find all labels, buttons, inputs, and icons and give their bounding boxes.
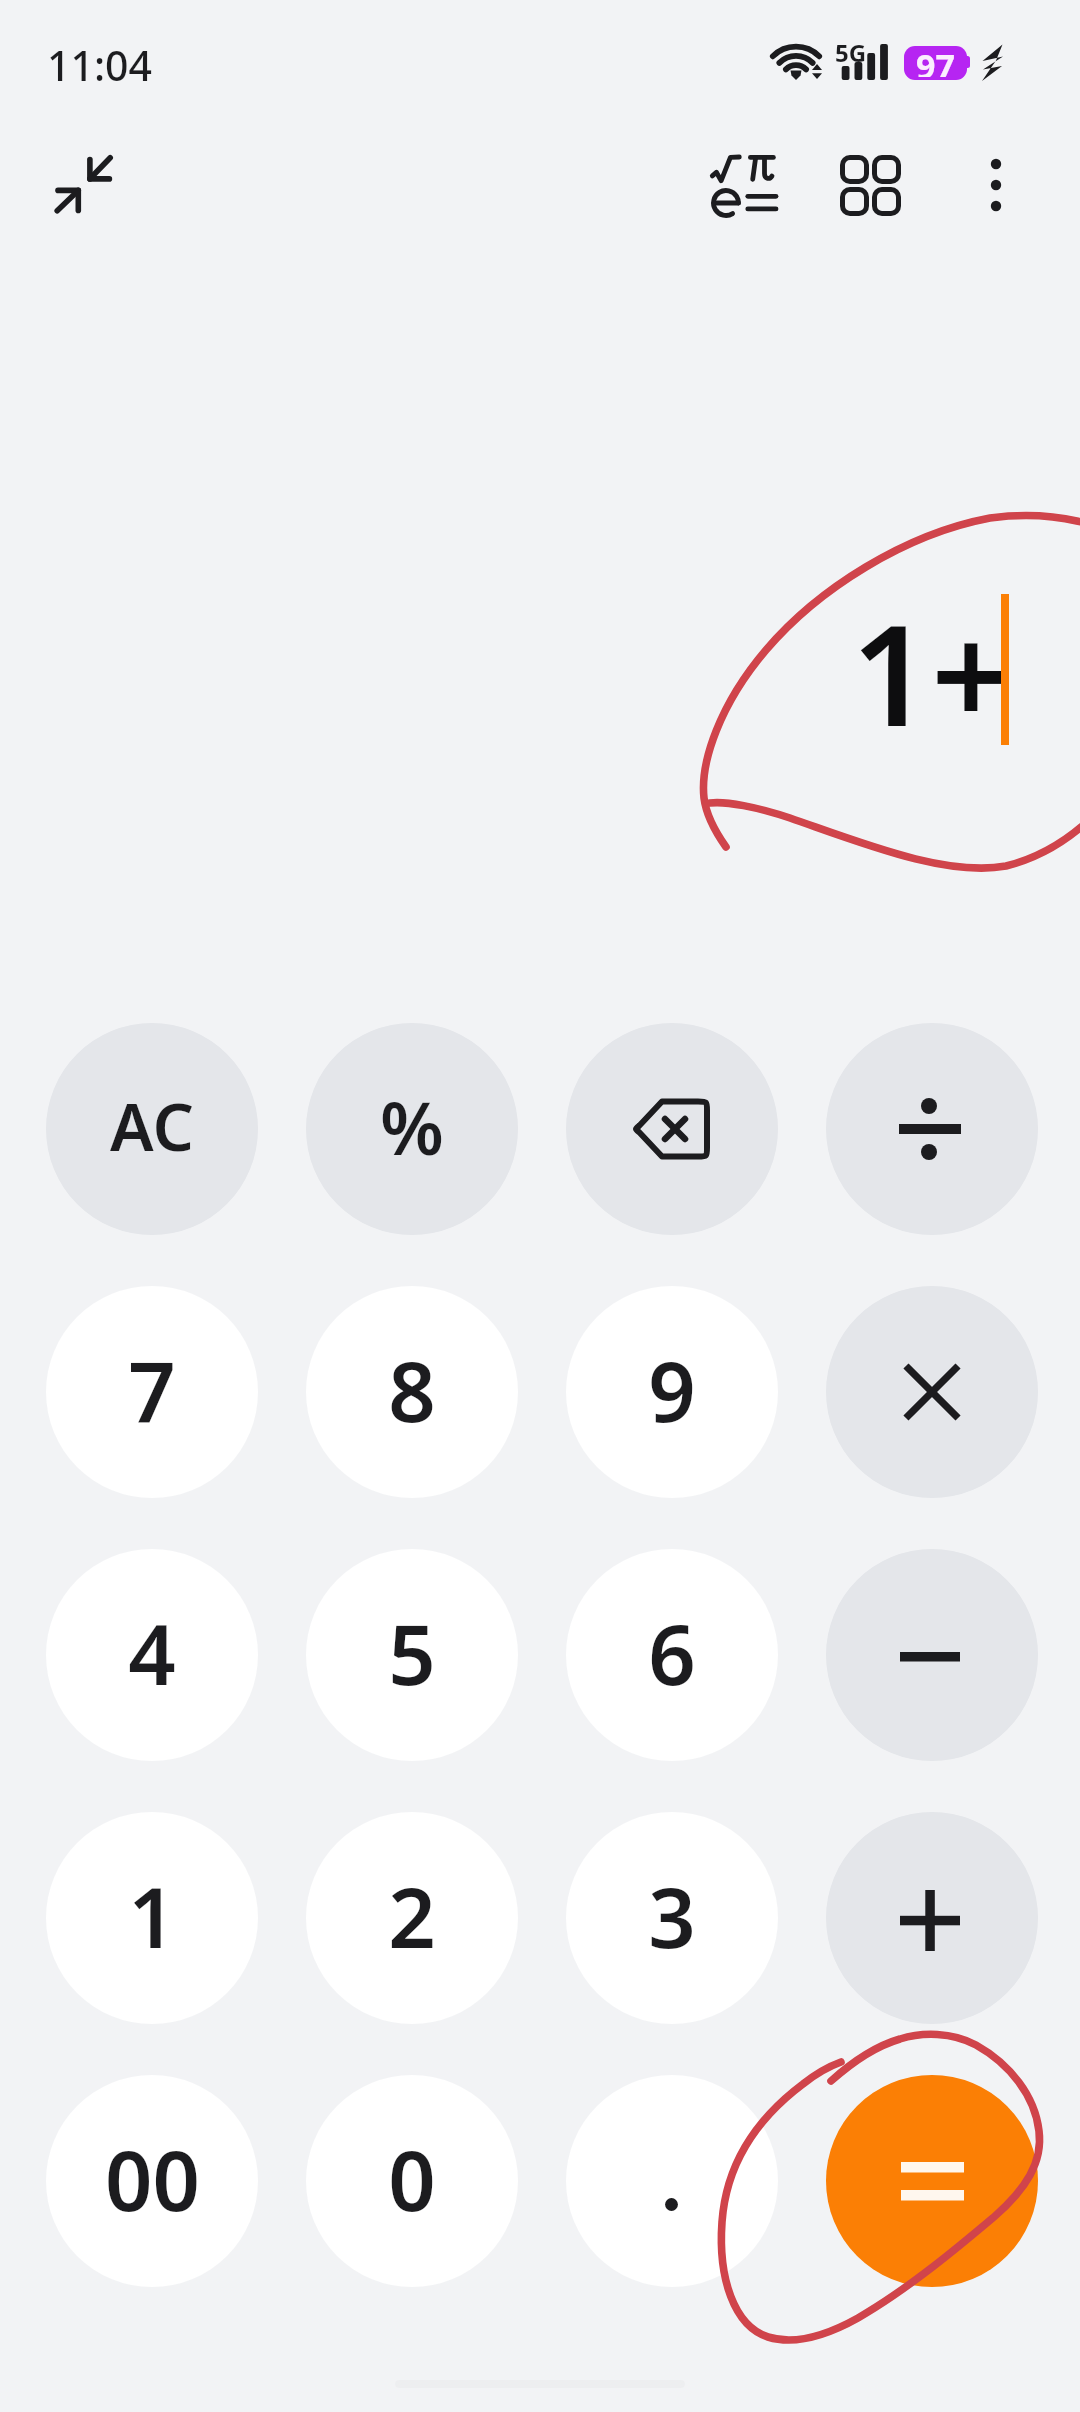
staticText: 3 xyxy=(648,1859,696,1972)
staticText: 2 xyxy=(388,1859,436,1972)
staticText: 1 xyxy=(128,1859,176,1972)
button[interactable]: 9 xyxy=(566,1286,778,1498)
button[interactable]: 1 xyxy=(46,1812,258,2024)
button[interactable]: Divide xyxy=(826,1023,1038,1235)
button[interactable]: Equals xyxy=(826,2075,1038,2287)
button[interactable]: Keypad layout xyxy=(815,132,925,242)
button[interactable]: 4 xyxy=(46,1549,258,1761)
staticText: % xyxy=(380,1077,444,1176)
button[interactable]: Subtract xyxy=(826,1549,1038,1761)
button[interactable]: 7 xyxy=(46,1286,258,1498)
button[interactable]: Multiply xyxy=(826,1286,1038,1498)
staticText: 11:04 xyxy=(47,37,152,93)
staticText: 7 xyxy=(128,1333,176,1446)
button[interactable]: 00 xyxy=(46,2075,258,2287)
button[interactable]: Add xyxy=(826,1812,1038,2024)
button[interactable]: More options xyxy=(941,132,1051,242)
staticText: 5 xyxy=(388,1596,436,1709)
button[interactable]: 6 xyxy=(566,1549,778,1761)
staticText: 97 xyxy=(916,46,955,77)
button[interactable]: Decimal point xyxy=(566,2075,778,2287)
staticText: 4 xyxy=(128,1596,176,1709)
button[interactable]: 2 xyxy=(306,1812,518,2024)
staticText: 0 xyxy=(388,2122,436,2235)
button[interactable]: AC xyxy=(46,1023,258,1235)
button[interactable]: 0 xyxy=(306,2075,518,2287)
staticText: 00 xyxy=(105,2122,200,2235)
button[interactable]: Backspace xyxy=(566,1023,778,1235)
button[interactable]: % xyxy=(306,1023,518,1235)
staticText: 5G xyxy=(835,36,867,69)
button[interactable]: Collapse xyxy=(24,132,136,244)
button[interactable]: Scientific mode xyxy=(696,140,796,240)
button[interactable]: 3 xyxy=(566,1812,778,2024)
staticText: 1+ xyxy=(851,576,1012,767)
staticText: 8 xyxy=(388,1333,436,1446)
button[interactable]: 5 xyxy=(306,1549,518,1761)
staticText: AC xyxy=(110,1082,194,1171)
button[interactable]: 8 xyxy=(306,1286,518,1498)
staticText: 9 xyxy=(648,1333,696,1446)
staticText: 6 xyxy=(648,1596,696,1709)
